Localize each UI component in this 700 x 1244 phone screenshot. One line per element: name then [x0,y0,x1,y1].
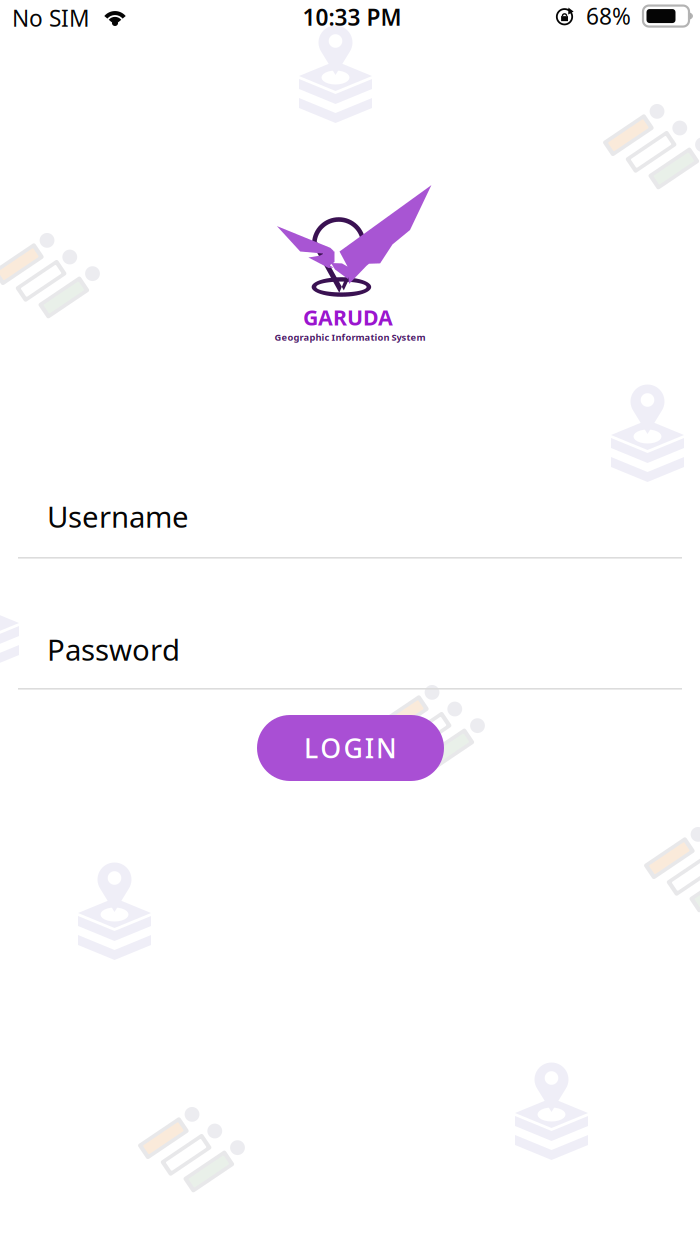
staticText: GARUDA [303,303,393,331]
staticText: Password [47,630,180,669]
staticText: G [343,730,362,766]
staticText: Geographic Information System [274,331,425,343]
staticText: I [365,730,374,766]
staticText: 10:33 PM [302,2,401,32]
staticText: L [304,730,318,766]
button[interactable]: L [257,715,444,781]
staticText: Username [47,497,189,536]
staticText: 68% [586,1,631,31]
staticText: No SIM [12,3,90,33]
staticText: O [320,730,341,766]
staticText: N [376,730,397,766]
